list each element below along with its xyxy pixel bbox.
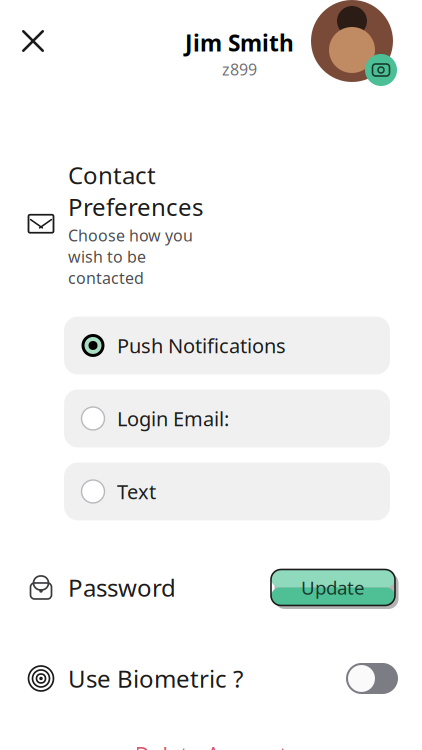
button[interactable]: Push Notifications [64, 316, 390, 374]
button[interactable]: Update [266, 564, 400, 610]
button[interactable]: Use Biometric toggle [344, 660, 400, 696]
button[interactable]: Change profile photo [306, 0, 398, 87]
staticText: Text [117, 478, 156, 505]
button[interactable]: Text [64, 462, 390, 520]
staticText: Contact Preferences [68, 159, 203, 223]
button[interactable]: Login Email: [64, 389, 390, 447]
staticText: z899 [222, 59, 257, 80]
staticText: Push Notifications [117, 332, 286, 359]
staticText: Login Email: [117, 405, 229, 432]
staticText: Jim Smith [185, 28, 294, 58]
button[interactable]: Close [10, 18, 56, 64]
staticText: Use Biometric ? [68, 662, 243, 694]
staticText: Choose how you wish to be contacted [68, 225, 193, 288]
staticText: Password [68, 571, 176, 603]
staticText: Delete Account [134, 740, 287, 750]
staticText: Update [301, 575, 365, 600]
button[interactable]: Delete Account [124, 734, 297, 750]
